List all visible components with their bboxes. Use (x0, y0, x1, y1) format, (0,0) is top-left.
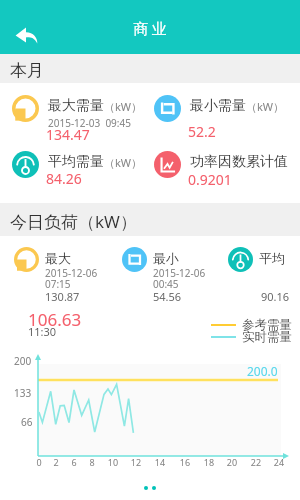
staticText: 18 (201, 456, 217, 468)
staticText: 参考需量 (242, 317, 292, 333)
button[interactable]: 最大需量 (0, 83, 142, 139)
staticText: 200 (14, 354, 32, 368)
staticText: 24 (271, 456, 287, 468)
staticText: 2015-12-06 (45, 266, 98, 280)
staticText: 16 (177, 456, 193, 468)
staticText: 最小需量 (190, 97, 246, 115)
staticText: 实时需量 (242, 329, 292, 345)
staticText: （kW） (246, 99, 285, 114)
staticText: 平均需量 (48, 153, 104, 171)
staticText: 106.63 (28, 308, 82, 331)
staticText: 07:15 (45, 277, 71, 291)
staticText: 12 (128, 456, 144, 468)
staticText: 8 (84, 456, 100, 468)
staticText: 0 (31, 456, 47, 468)
button[interactable]: 最小需量 (142, 83, 300, 139)
staticText: 0.9201 (188, 170, 232, 189)
staticText: 130.87 (45, 289, 80, 304)
staticText: 2015-12-03 09:45 (48, 116, 131, 130)
staticText: （kW） (104, 99, 143, 114)
staticText: 商业 (132, 20, 168, 39)
staticText: 10 (105, 456, 121, 468)
button[interactable]: 最大 (0, 236, 108, 261)
staticText: 20 (224, 456, 240, 468)
staticText: 最小 (153, 250, 179, 266)
staticText: 52.2 (188, 122, 216, 141)
button[interactable]: 最小 (108, 236, 214, 261)
staticText: 54.56 (153, 289, 182, 304)
staticText: 66 (21, 415, 33, 429)
staticText: 11:30 (28, 324, 57, 339)
button[interactable]: 平均需量 (0, 139, 142, 195)
button[interactable]: Back (9, 21, 42, 49)
staticText: 133 (14, 386, 32, 400)
staticText: 84.26 (46, 169, 82, 188)
staticText: 平均 (259, 250, 285, 266)
staticText: 本月 (10, 60, 44, 81)
staticText: 90.16 (261, 289, 290, 304)
staticText: 22 (248, 456, 264, 468)
button[interactable]: 平均 (214, 236, 300, 261)
staticText: 最大 (45, 250, 71, 266)
staticText: 6 (66, 456, 82, 468)
staticText: 200.0 (247, 363, 278, 379)
staticText: 2 (48, 456, 64, 468)
staticText: 最大需量 (48, 97, 104, 115)
staticText: 00:45 (153, 277, 179, 291)
staticText: 2015-12-06 (153, 266, 206, 280)
staticText: 今日负荷（kW） (10, 210, 137, 233)
staticText: 134.47 (46, 125, 90, 144)
staticText: 功率因数累计值 (190, 153, 288, 171)
staticText: 14 (152, 456, 168, 468)
button[interactable]: 功率因数累计值 (142, 139, 300, 195)
staticText: （kW） (104, 155, 143, 170)
